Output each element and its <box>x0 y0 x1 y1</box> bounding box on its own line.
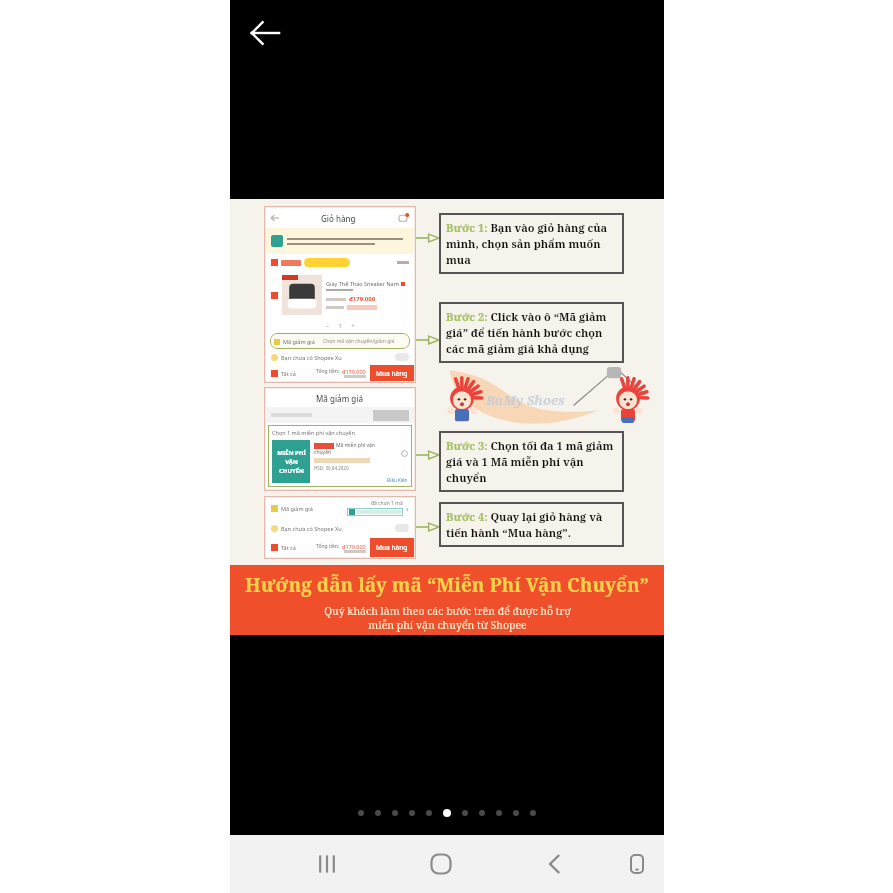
staticText: Mã miễn phí vận <box>336 442 376 449</box>
button[interactable]: Bước 3: Chọn tối đa 1 mã giảm giá và 1 M… <box>446 438 617 485</box>
staticText: Bước 4: Quay lại giỏ hàng và tiến hành “… <box>446 509 617 540</box>
staticText: đ179.000 <box>342 543 366 550</box>
button[interactable]: Bước 1: Bạn vào giỏ hàng của mình, chọn … <box>446 220 617 267</box>
button[interactable]: Recents <box>300 837 354 891</box>
button[interactable]: Back <box>528 837 582 891</box>
staticText: Giày Thể Thao Sneaker Nam <box>326 280 399 287</box>
staticText: Bạn chưa có Shopee Xu <box>281 354 342 361</box>
button[interactable]: Bước 2: Click vào ô “Mã giảm giá” để tiế… <box>446 309 617 356</box>
staticText: Mua hàng <box>376 543 408 552</box>
staticText: Bước 2: Click vào ô “Mã giảm giá” để tiế… <box>446 309 617 356</box>
staticText: › <box>406 503 409 514</box>
button[interactable]: Mua hàng <box>370 365 414 381</box>
staticText: Tất cả <box>281 544 296 551</box>
staticText: Tổng tiền: <box>316 543 340 550</box>
button[interactable]: Home <box>414 837 468 891</box>
staticText: Hướng dẫn lấy mã “Miễn Phí Vận Chuyển” <box>245 572 649 598</box>
staticText: đã chọn 1 mã <box>371 500 403 507</box>
staticText: Điều Kiện <box>387 477 408 483</box>
button[interactable]: Bước 4: Quay lại giỏ hàng và tiến hành “… <box>446 509 617 540</box>
staticText: MIỄN PHÍ VẬN CHUYỂN <box>277 449 306 475</box>
staticText: HSD: 30.04.2020 <box>314 465 349 471</box>
staticText: Chọn 1 mã miễn phí vận chuyển <box>272 429 355 436</box>
staticText: Giỏ hàng <box>321 213 356 224</box>
staticText: – 1 + <box>326 322 355 330</box>
staticText: Mã giảm giá <box>281 505 313 512</box>
staticText: Quý khách làm theo các bước trên để được… <box>324 604 571 632</box>
button[interactable]: Mua hàng <box>370 538 414 557</box>
staticText: đ179.000 <box>342 368 366 375</box>
staticText: Bạn chưa có Shopee Xu <box>281 525 342 532</box>
staticText: Mã giảm giá <box>283 338 315 345</box>
staticText: Chọn mã vận chuyển/giảm giá <box>323 338 395 345</box>
staticText: BaMy Shoes <box>486 391 565 409</box>
button[interactable]: One handed mode <box>610 837 664 891</box>
staticText: Mã giảm giá <box>316 393 364 404</box>
staticText: Mua hàng <box>376 369 408 378</box>
staticText: đ179.000 <box>349 295 376 303</box>
staticText: Bước 3: Chọn tối đa 1 mã giảm giá và 1 M… <box>446 438 617 485</box>
staticText: Bước 1: Bạn vào giỏ hàng của mình, chọn … <box>446 220 617 267</box>
button[interactable]: Giỏ hàng <box>230 199 664 635</box>
staticText: Tất cả <box>281 370 296 377</box>
button[interactable]: Back <box>240 8 290 58</box>
staticText: chuyển <box>314 449 332 456</box>
staticText: Tổng tiền: <box>316 368 340 375</box>
